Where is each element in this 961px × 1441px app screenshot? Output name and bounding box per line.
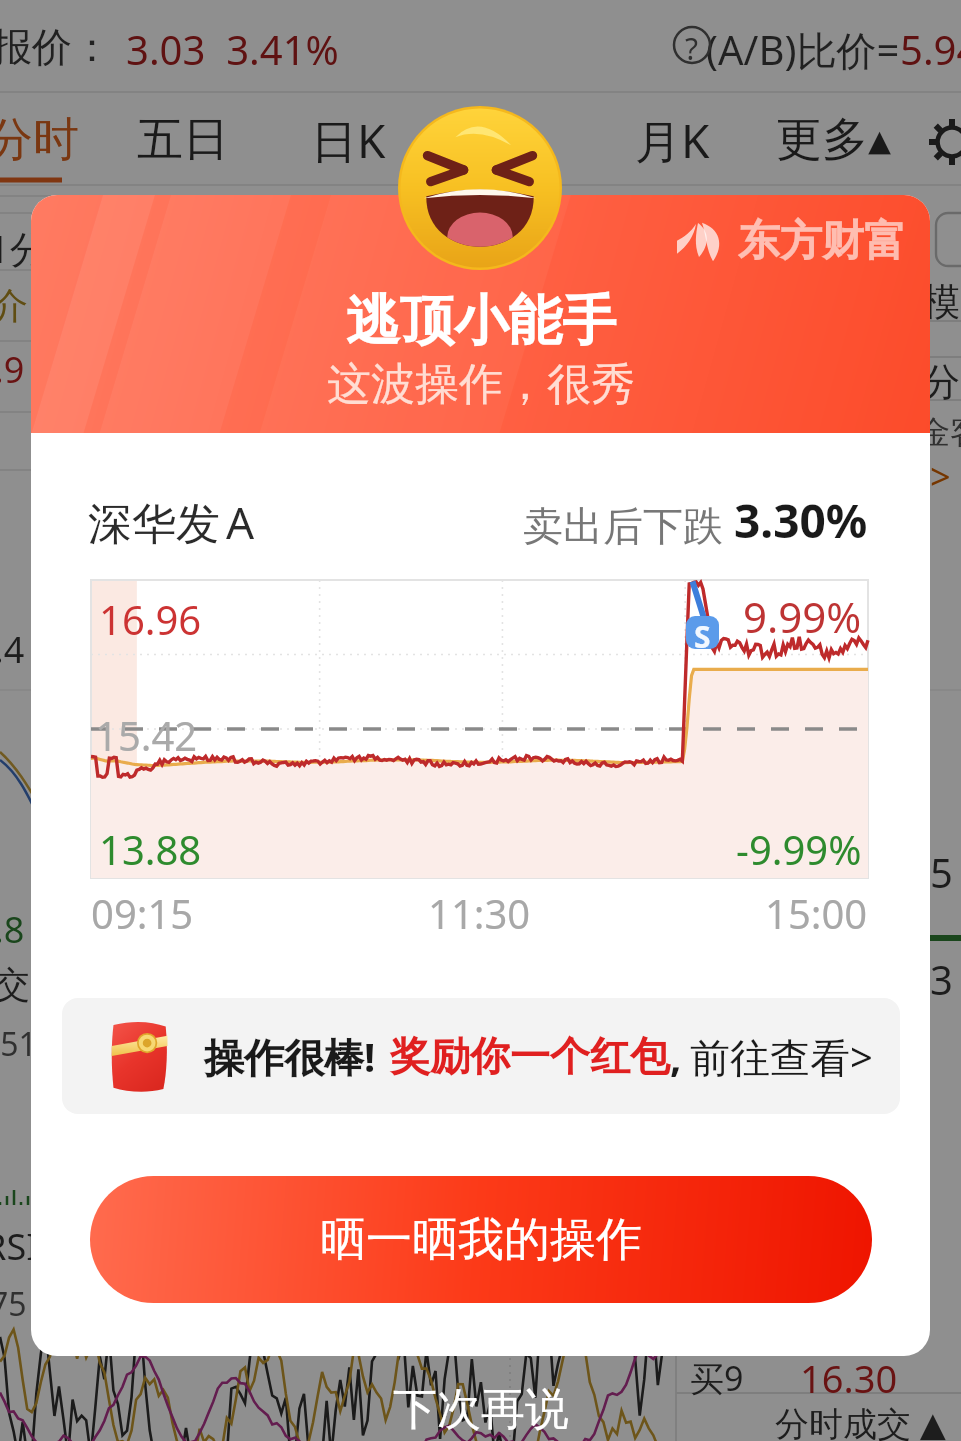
staticText: 75 <box>0 1282 27 1326</box>
staticText: 16.30 <box>800 1352 898 1404</box>
button[interactable]: 五日 <box>124 96 242 184</box>
button[interactable]: 更多▴ <box>764 96 904 184</box>
staticText: 13.88 <box>99 822 202 876</box>
button[interactable]: 分时 <box>0 96 92 184</box>
staticText: 金客 <box>918 412 961 452</box>
staticText: 日K <box>311 109 386 172</box>
staticText: .4 <box>0 625 25 674</box>
staticText: 15:00 <box>765 886 868 940</box>
staticText: 下次再说 <box>393 1382 569 1437</box>
staticText: 奖励你一个红包 <box>390 1031 670 1081</box>
staticText: 股报价： <box>0 22 112 72</box>
staticText: .8 <box>0 905 25 954</box>
staticText: 751 <box>0 1022 37 1066</box>
staticText: (A/B)比价= <box>706 22 900 77</box>
staticText: 五日 <box>137 111 229 169</box>
staticText: 买9 <box>690 1355 744 1401</box>
staticText: 东方财富 <box>738 215 906 268</box>
staticText: 16.96 <box>99 592 202 646</box>
button[interactable]: 晒一晒我的操作 <box>90 1176 872 1303</box>
button[interactable]: 操作很棒! <box>62 998 900 1114</box>
staticText: 11:30 <box>428 886 531 940</box>
staticText: 9.99% <box>743 588 862 645</box>
staticText: 3 <box>930 952 953 1006</box>
staticText: 5.94 <box>900 22 961 76</box>
staticText: .9 <box>0 345 25 394</box>
staticText: 模 <box>922 278 960 326</box>
staticText: 逃顶小能手 <box>346 287 616 355</box>
staticText: 操作很棒! <box>204 1029 376 1084</box>
staticText: S <box>694 616 711 649</box>
staticText: 09:15 <box>91 886 194 940</box>
staticText: 1分 <box>0 222 48 274</box>
staticText: 交 <box>0 962 30 1007</box>
button[interactable]: 月K <box>618 96 726 184</box>
staticText: 前往查看> <box>690 1029 873 1084</box>
staticText: 月K <box>635 109 710 172</box>
staticText: 介 <box>0 283 28 328</box>
staticText: 5 <box>930 845 953 899</box>
staticText: 3.30% <box>734 489 868 552</box>
staticText: 分时 <box>0 111 79 169</box>
staticText: 3.03 3.41% <box>126 22 339 76</box>
staticText: 深华发 <box>88 497 220 552</box>
button[interactable]: 下次再说 <box>0 1361 961 1441</box>
staticText: > <box>930 452 951 501</box>
staticText: 这波操作，很秀 <box>327 357 635 412</box>
staticText: 更多▴ <box>776 111 892 169</box>
staticText: -9.99% <box>736 822 862 876</box>
staticText: 卖出后下跌 <box>523 497 734 552</box>
staticText: 分 <box>922 358 960 406</box>
staticText: 分时成交 ▲ <box>775 1400 946 1441</box>
staticText: RSI <box>0 1222 39 1271</box>
button[interactable]: 日K <box>294 96 402 184</box>
staticText: ? <box>685 28 699 69</box>
staticText: 晒一晒我的操作 <box>320 1211 642 1269</box>
staticText: 15.42 <box>95 708 198 762</box>
button[interactable]: Settings <box>928 118 961 166</box>
staticText: , <box>670 1029 682 1083</box>
staticText: A <box>226 492 255 552</box>
